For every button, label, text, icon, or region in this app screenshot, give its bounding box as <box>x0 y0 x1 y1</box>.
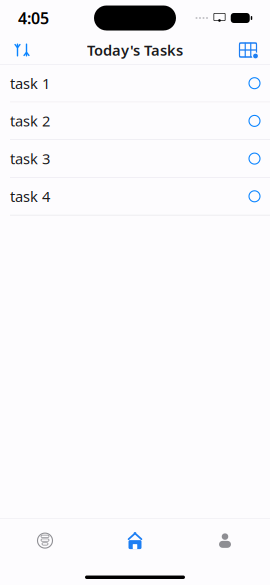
staticText: task 2 <box>10 111 50 131</box>
button[interactable]: Table view <box>231 36 265 64</box>
staticText: task 3 <box>10 149 50 168</box>
button[interactable]: task 2 <box>0 102 270 140</box>
button[interactable]: task 1 <box>0 65 270 102</box>
staticText: Today's Tasks <box>87 40 183 60</box>
button[interactable]: Sort <box>5 36 39 64</box>
button[interactable]: task 3 <box>0 140 270 178</box>
button[interactable]: Mind <box>0 519 90 563</box>
staticText: task 4 <box>10 187 50 206</box>
button[interactable]: Profile <box>180 519 270 563</box>
button[interactable]: task 4 <box>0 178 270 215</box>
staticText: task 1 <box>10 73 50 93</box>
button[interactable]: Home <box>90 519 180 563</box>
staticText: 4:05 <box>18 7 49 29</box>
